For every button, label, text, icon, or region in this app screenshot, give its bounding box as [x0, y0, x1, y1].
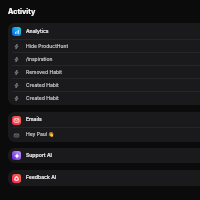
other: Emails — [12, 116, 21, 125]
button[interactable]: Created Habit — [8, 92, 200, 105]
button[interactable]: Feedback AI — [8, 170, 200, 186]
button[interactable]: Created Habit — [8, 79, 200, 92]
staticText: Support AI — [26, 152, 52, 158]
staticText: Removed Habit — [26, 69, 62, 75]
staticText: Created Habit — [26, 82, 59, 88]
button[interactable]: /inspiration — [8, 53, 200, 66]
button[interactable]: Hey Paul — [8, 128, 200, 142]
staticText: /inspiration — [26, 56, 53, 62]
staticText: Emails — [26, 116, 42, 122]
button[interactable]: Emails — [8, 112, 200, 128]
other: Feedback AI — [12, 174, 21, 183]
staticText: Hide ProductHunt — [26, 43, 69, 49]
button[interactable]: Support AI — [8, 148, 200, 163]
staticText: 👋 — [48, 131, 55, 137]
staticText: Hey Paul — [26, 131, 47, 137]
button[interactable]: Removed Habit — [8, 66, 200, 79]
staticText: Created Habit — [26, 95, 59, 101]
staticText: Activity — [8, 7, 36, 16]
other: Support AI — [12, 151, 21, 160]
staticText: Feedback AI — [26, 174, 57, 180]
button[interactable]: Hide ProductHunt — [8, 40, 200, 53]
other: Analytics — [12, 27, 21, 36]
button[interactable]: Analytics — [8, 23, 200, 40]
staticText: Analytics — [26, 28, 49, 34]
